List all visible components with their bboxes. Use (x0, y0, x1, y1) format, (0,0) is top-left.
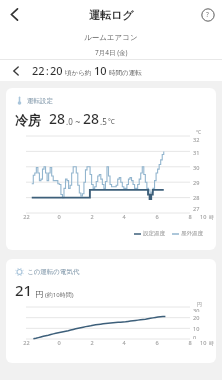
staticText: 22 (23, 339, 30, 347)
staticText: 運転ログ (89, 8, 134, 22)
staticText: 0 (57, 213, 61, 221)
staticText: 円 (197, 301, 202, 307)
staticText: 0 (57, 339, 61, 347)
staticText: 21 (15, 280, 33, 300)
staticText: °C (108, 117, 115, 126)
button[interactable]: Back (0, 0, 29, 29)
staticText: 7月4日 (金) (95, 48, 128, 57)
staticText: 2 (90, 213, 94, 221)
button[interactable]: Help (193, 0, 222, 29)
staticText: 29 (193, 179, 200, 187)
staticText: 10 (193, 325, 200, 333)
staticText: .0 (66, 116, 73, 127)
staticText: 32 (193, 136, 200, 144)
staticText: ~ (73, 115, 83, 127)
staticText: 10 (94, 63, 107, 78)
staticText: 冷房 (15, 112, 41, 128)
staticText: 20 (193, 314, 200, 322)
staticText: ルームエアコン (84, 33, 138, 42)
staticText: 28 (49, 109, 66, 128)
staticText: 20 (50, 63, 63, 78)
staticText: ? (206, 10, 209, 19)
staticText: 31 (193, 149, 200, 157)
staticText: 28 (193, 194, 200, 202)
staticText: 時間の運転 (109, 69, 142, 77)
staticText: 27 (193, 205, 200, 213)
staticText: 6 (155, 213, 159, 221)
staticText: 円 (35, 289, 43, 299)
staticText: 22 (32, 63, 45, 78)
staticText: 頃から約 (65, 69, 92, 77)
staticText: 10 (200, 213, 207, 221)
staticText: 運転設定 (27, 97, 53, 105)
staticText: 4 (122, 339, 126, 347)
staticText: (約10時間) (45, 291, 74, 299)
staticText: 30 (193, 307, 200, 312)
staticText: °C (196, 129, 202, 136)
staticText: .5 (100, 116, 107, 127)
staticText: 28 (83, 109, 100, 128)
staticText: 屋外温度 (181, 230, 203, 237)
staticText: : (46, 64, 49, 78)
staticText: 22 (23, 213, 30, 221)
staticText: 30 (193, 164, 200, 172)
staticText: 時 (209, 214, 214, 220)
staticText: 設定温度 (143, 230, 165, 237)
button[interactable]: Previous (0, 60, 222, 81)
other: Previous (0, 60, 32, 81)
staticText: 4 (122, 213, 126, 221)
staticText: 8 (188, 213, 192, 221)
staticText: この運転の電気代 (27, 268, 80, 276)
staticText: 2 (90, 339, 94, 347)
staticText: 8 (188, 339, 192, 347)
staticText: 6 (155, 339, 159, 347)
staticText: 時 (209, 340, 214, 346)
staticText: 0 (193, 334, 197, 339)
staticText: 10 (200, 339, 207, 347)
